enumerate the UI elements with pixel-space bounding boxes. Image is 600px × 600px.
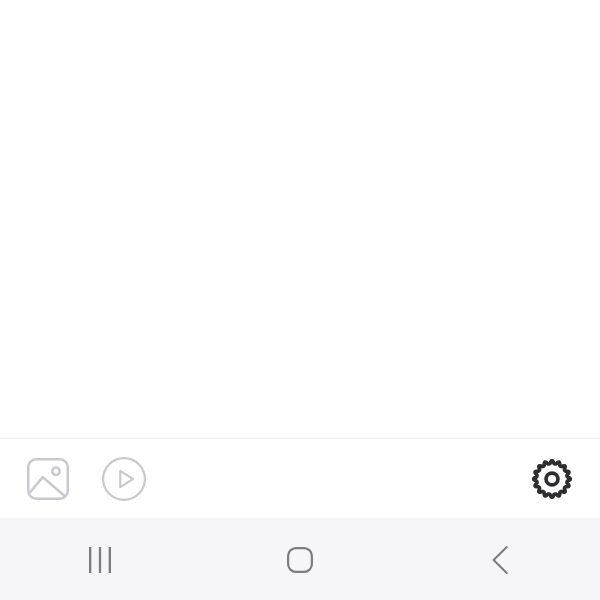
- button[interactable]: Home: [200, 518, 400, 600]
- button[interactable]: Back: [400, 518, 600, 600]
- button[interactable]: Settings: [524, 451, 580, 507]
- button[interactable]: Play: [98, 453, 150, 505]
- button[interactable]: Recent apps: [0, 518, 200, 600]
- button[interactable]: Insert image: [22, 453, 74, 505]
